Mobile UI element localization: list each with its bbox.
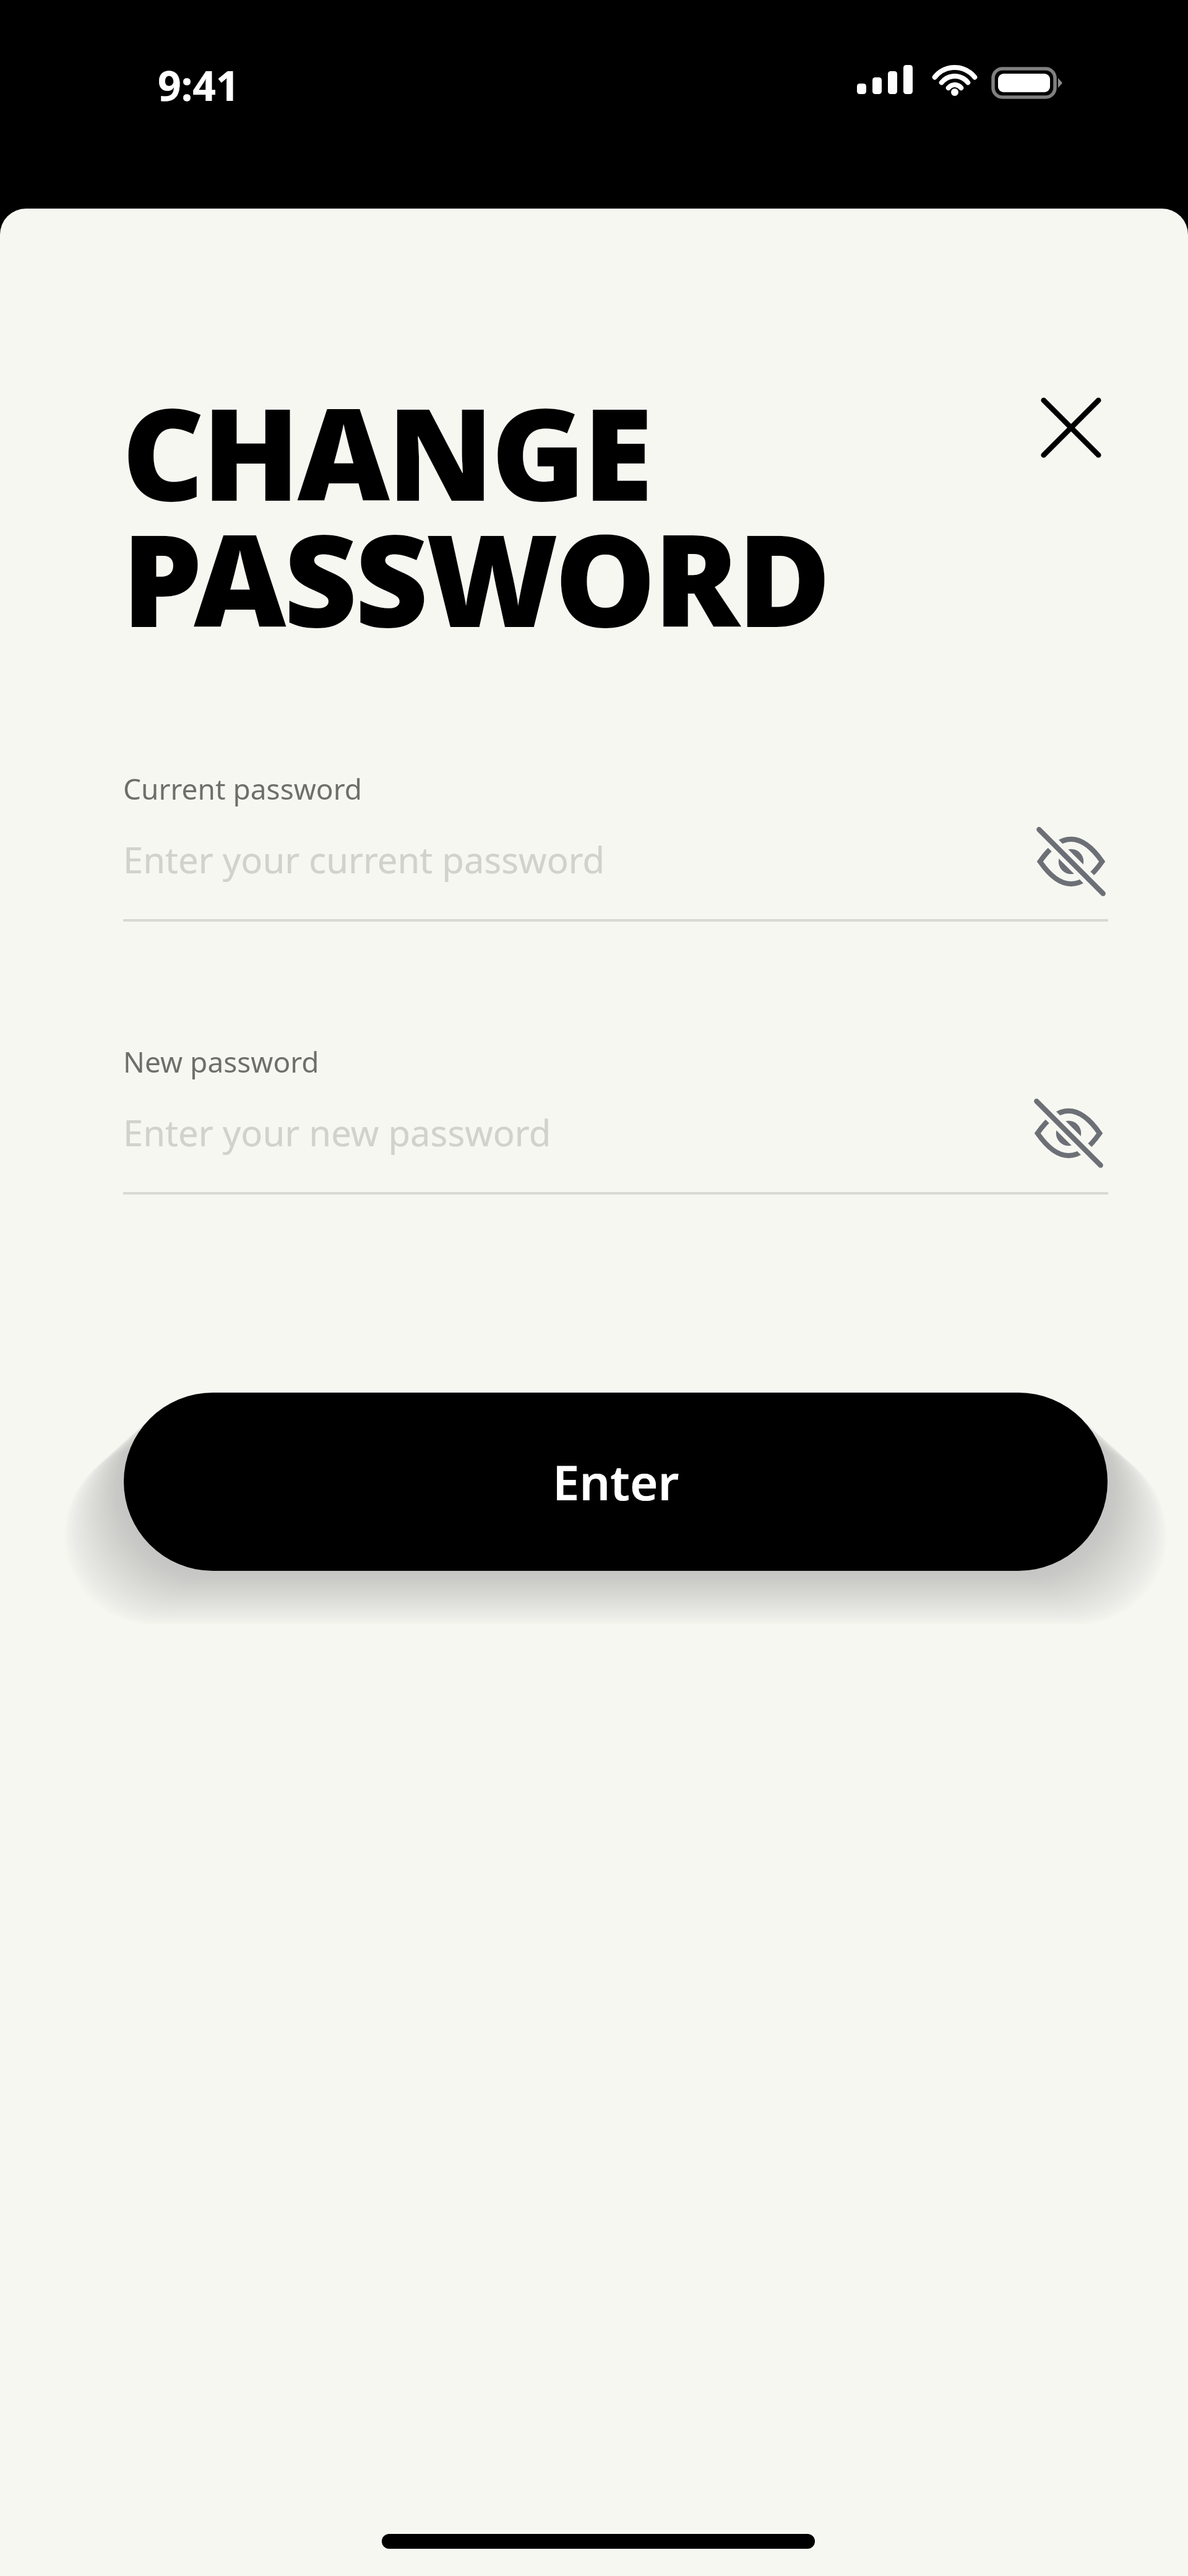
button[interactable]: Close <box>1025 381 1117 474</box>
staticText: CHANGE PASSWORD <box>122 365 829 664</box>
staticText: Enter your current password <box>123 835 605 884</box>
staticText: Enter <box>553 1449 679 1515</box>
staticText: New password <box>123 1042 319 1081</box>
button[interactable]: Show password <box>1022 1087 1115 1180</box>
staticText: Enter your new password <box>123 1108 551 1157</box>
button[interactable]: Show password <box>1025 815 1117 908</box>
staticText: 9:41 <box>158 57 239 113</box>
staticText: Current password <box>123 769 363 808</box>
button[interactable]: Enter <box>124 1393 1108 1571</box>
